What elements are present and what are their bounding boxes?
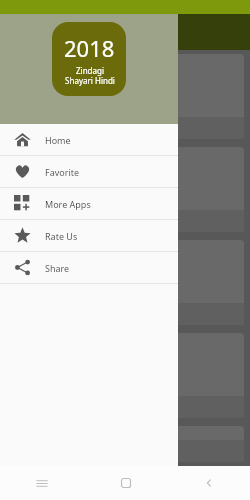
- button[interactable]: Back: [202, 476, 216, 490]
- staticText: Zindagi Shayari Hindi: [65, 65, 115, 86]
- button[interactable]: Home: [119, 476, 133, 490]
- staticText: More Apps: [45, 198, 91, 210]
- staticText: Rate Us: [45, 230, 78, 242]
- button[interactable]: Favorite: [6, 426, 244, 462]
- button[interactable]: Favorite: [0, 156, 178, 187]
- staticText: Share: [45, 262, 70, 274]
- button[interactable]: Favorite: [6, 54, 244, 139]
- staticText: Favorite: [45, 166, 80, 178]
- button[interactable]: Recents: [35, 476, 49, 490]
- button[interactable]: Rate Us: [0, 220, 178, 251]
- button[interactable]: Favorite: [6, 147, 244, 232]
- button[interactable]: Share: [0, 252, 178, 283]
- button[interactable]: More Apps: [0, 188, 178, 219]
- button[interactable]: Favorite: [6, 240, 244, 325]
- button[interactable]: Favorite: [6, 333, 244, 418]
- other: Favorite: [30, 215, 43, 228]
- staticText: Home: [45, 134, 71, 146]
- button[interactable]: Home: [0, 124, 178, 155]
- staticText: 2018: [64, 33, 115, 63]
- other: Favorite: [30, 122, 43, 135]
